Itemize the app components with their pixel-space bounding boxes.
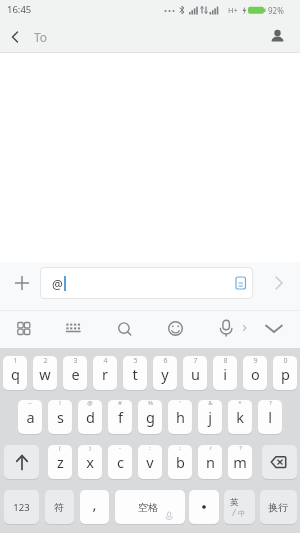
staticText: e (71, 364, 80, 384)
staticText: y (161, 364, 169, 384)
staticText: f (118, 407, 123, 427)
staticText: v (146, 452, 154, 472)
staticText: r (102, 364, 108, 384)
staticText: d (86, 407, 95, 427)
staticText: - (119, 444, 121, 452)
staticText: 2 (43, 356, 48, 366)
staticText: 92% (268, 5, 284, 16)
staticText: ! (59, 399, 61, 407)
staticText: 7 (193, 356, 198, 366)
staticText: o (251, 364, 260, 384)
staticText: 5 (133, 356, 138, 366)
staticText: a (26, 407, 35, 427)
staticText: w (39, 364, 51, 384)
staticText: % (148, 399, 153, 407)
staticText: h (176, 407, 185, 427)
staticText: z (57, 452, 64, 472)
staticText: 123 (13, 501, 30, 514)
staticText: To (34, 29, 48, 45)
staticText: 中 (238, 509, 245, 518)
staticText: p (281, 364, 290, 384)
staticText: g (146, 407, 155, 427)
staticText: 换行 (268, 501, 288, 514)
staticText: ? (269, 399, 272, 407)
staticText: 9 (253, 356, 258, 366)
staticText: ~ (28, 399, 32, 407)
staticText: q (11, 364, 20, 384)
staticText: n (206, 452, 215, 472)
staticText: & (208, 399, 213, 407)
staticText: i (223, 364, 227, 384)
staticText: u (191, 364, 200, 384)
staticText: 1 (13, 356, 18, 366)
staticText: 16:45 (7, 3, 32, 16)
staticText: b (176, 452, 185, 472)
staticText: c (117, 452, 124, 472)
staticText: 英 (230, 497, 239, 508)
staticText: ; (179, 444, 181, 452)
staticText: 3 (73, 356, 78, 366)
staticText: / (209, 444, 212, 452)
staticText: x (86, 452, 94, 472)
staticText: m (233, 452, 247, 472)
staticText: 空格 (138, 501, 158, 514)
staticText: 8 (223, 356, 228, 366)
staticText: : (149, 444, 151, 452)
staticText: @ (52, 276, 63, 292)
staticText: 0 (283, 356, 288, 366)
staticText: j (208, 407, 212, 427)
staticText: 符 (54, 501, 64, 514)
staticText: 4 (103, 356, 108, 366)
staticText: ) (89, 444, 91, 452)
staticText: H+ (228, 5, 238, 15)
staticText: * (238, 399, 242, 407)
staticText: ( (59, 444, 61, 452)
staticText: ' (179, 399, 181, 407)
staticText: 6 (163, 356, 168, 366)
staticText: , (92, 494, 97, 514)
staticText: t (132, 364, 138, 384)
staticText: l (268, 407, 272, 427)
staticText: s (57, 407, 64, 427)
staticText: @ (87, 399, 93, 407)
staticText: ? (239, 444, 242, 452)
staticText: # (118, 399, 122, 407)
staticText: k (236, 407, 244, 427)
